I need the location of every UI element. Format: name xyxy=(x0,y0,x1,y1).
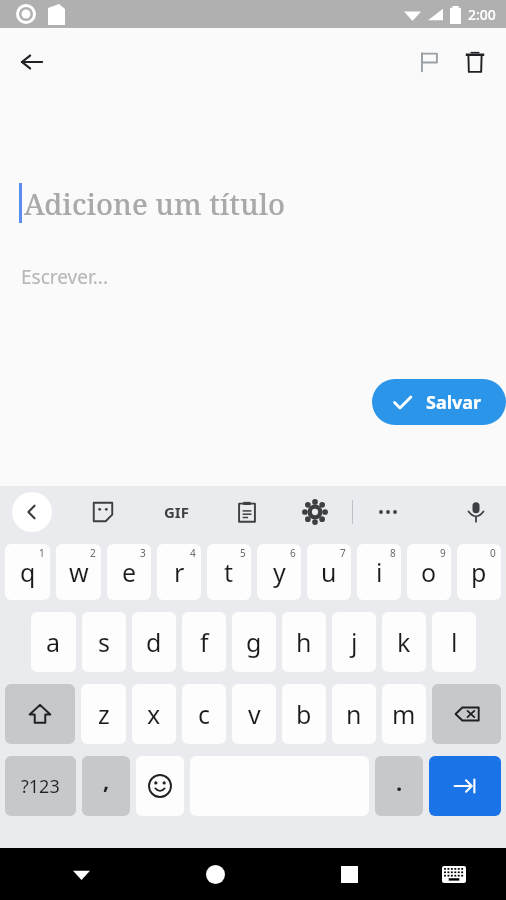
button[interactable]: , xyxy=(82,756,130,816)
button[interactable]: Hide keyboard xyxy=(58,851,104,897)
button[interactable]: v xyxy=(232,684,276,744)
staticText: h xyxy=(296,625,312,659)
staticText: 1 xyxy=(39,546,45,560)
staticText: 7 xyxy=(340,546,346,560)
button[interactable]: b xyxy=(282,684,326,744)
staticText: 2 xyxy=(90,546,96,560)
button[interactable]: Switch keyboard xyxy=(431,851,477,897)
staticText: f xyxy=(200,625,209,659)
button[interactable]: a xyxy=(31,612,76,672)
button[interactable]: l xyxy=(432,612,476,672)
staticText: 9 xyxy=(440,546,446,560)
button[interactable]: Next xyxy=(429,756,501,816)
button[interactable]: ?123 xyxy=(5,756,76,816)
staticText: m xyxy=(392,697,416,731)
button[interactable]: f xyxy=(182,612,226,672)
button[interactable]: Recent apps xyxy=(326,851,372,897)
button[interactable]: n xyxy=(332,684,376,744)
staticText: j xyxy=(351,625,358,659)
button[interactable]: r xyxy=(157,544,201,600)
button[interactable]: g xyxy=(232,612,276,672)
staticText: Escrever... xyxy=(21,264,109,290)
button[interactable]: Collapse toolbar xyxy=(12,492,52,532)
staticText: Salvar xyxy=(426,390,482,415)
button[interactable]: Shift xyxy=(5,684,75,744)
button[interactable]: i xyxy=(357,544,401,600)
staticText: l xyxy=(451,625,458,659)
staticText: g xyxy=(246,625,262,659)
button[interactable]: y xyxy=(257,544,301,600)
staticText: a xyxy=(46,625,61,659)
staticText: v xyxy=(248,697,261,731)
staticText: 8 xyxy=(390,546,396,560)
button[interactable]: h xyxy=(282,612,326,672)
staticText: 3 xyxy=(140,546,146,560)
button[interactable]: z xyxy=(81,684,126,744)
button[interactable]: GIF xyxy=(154,490,198,534)
staticText: 0 xyxy=(490,546,496,560)
staticText: o xyxy=(421,555,437,589)
button[interactable]: s xyxy=(82,612,126,672)
button[interactable]: u xyxy=(307,544,351,600)
staticText: b xyxy=(296,697,312,731)
staticText: x xyxy=(147,697,161,731)
staticText: w xyxy=(69,555,89,589)
staticText: t xyxy=(224,555,234,589)
button[interactable]: m xyxy=(382,684,426,744)
button[interactable]: Backspace xyxy=(432,684,501,744)
staticText: u xyxy=(321,555,337,589)
staticText: z xyxy=(98,697,110,731)
staticText: 6 xyxy=(290,546,296,560)
button[interactable]: p xyxy=(457,544,501,600)
button[interactable]: Home xyxy=(192,851,238,897)
button[interactable]: j xyxy=(332,612,376,672)
staticText: . xyxy=(396,767,403,797)
button[interactable]: Delete xyxy=(452,39,498,85)
button[interactable]: . xyxy=(375,756,423,816)
button[interactable]: t xyxy=(207,544,251,600)
staticText: s xyxy=(98,625,110,659)
button[interactable]: More options xyxy=(369,493,407,531)
button[interactable]: w xyxy=(56,544,101,600)
staticText: q xyxy=(20,555,36,589)
button[interactable]: q xyxy=(5,544,50,600)
button[interactable]: Flag xyxy=(406,39,452,85)
staticText: 2:00 xyxy=(468,5,496,24)
staticText: y xyxy=(273,555,286,589)
button[interactable]: o xyxy=(407,544,451,600)
button[interactable]: Back xyxy=(10,40,54,84)
button[interactable]: Clipboard xyxy=(228,493,266,531)
button[interactable]: Emoji xyxy=(136,756,184,816)
button[interactable]: d xyxy=(132,612,176,672)
button[interactable]: Stickers xyxy=(84,493,122,531)
staticText: k xyxy=(397,625,411,659)
button[interactable]: e xyxy=(107,544,151,600)
staticText: d xyxy=(146,625,162,659)
staticText: 5 xyxy=(240,546,246,560)
staticText: ?123 xyxy=(21,774,60,799)
button[interactable]: c xyxy=(182,684,226,744)
staticText: e xyxy=(122,555,137,589)
staticText: 4 xyxy=(190,546,196,560)
button[interactable]: Salvar xyxy=(372,379,506,425)
staticText: i xyxy=(376,555,383,589)
button[interactable]: Settings xyxy=(296,493,334,531)
staticText: GIF xyxy=(164,502,189,522)
staticText: , xyxy=(103,765,110,795)
staticText: c xyxy=(198,697,211,731)
staticText: r xyxy=(174,555,185,589)
button[interactable]: Voice input xyxy=(456,492,496,532)
staticText: n xyxy=(346,697,362,731)
button[interactable]: k xyxy=(382,612,426,672)
button[interactable]: x xyxy=(132,684,176,744)
staticText: Adicione um título xyxy=(24,184,286,223)
staticText: p xyxy=(471,555,487,589)
